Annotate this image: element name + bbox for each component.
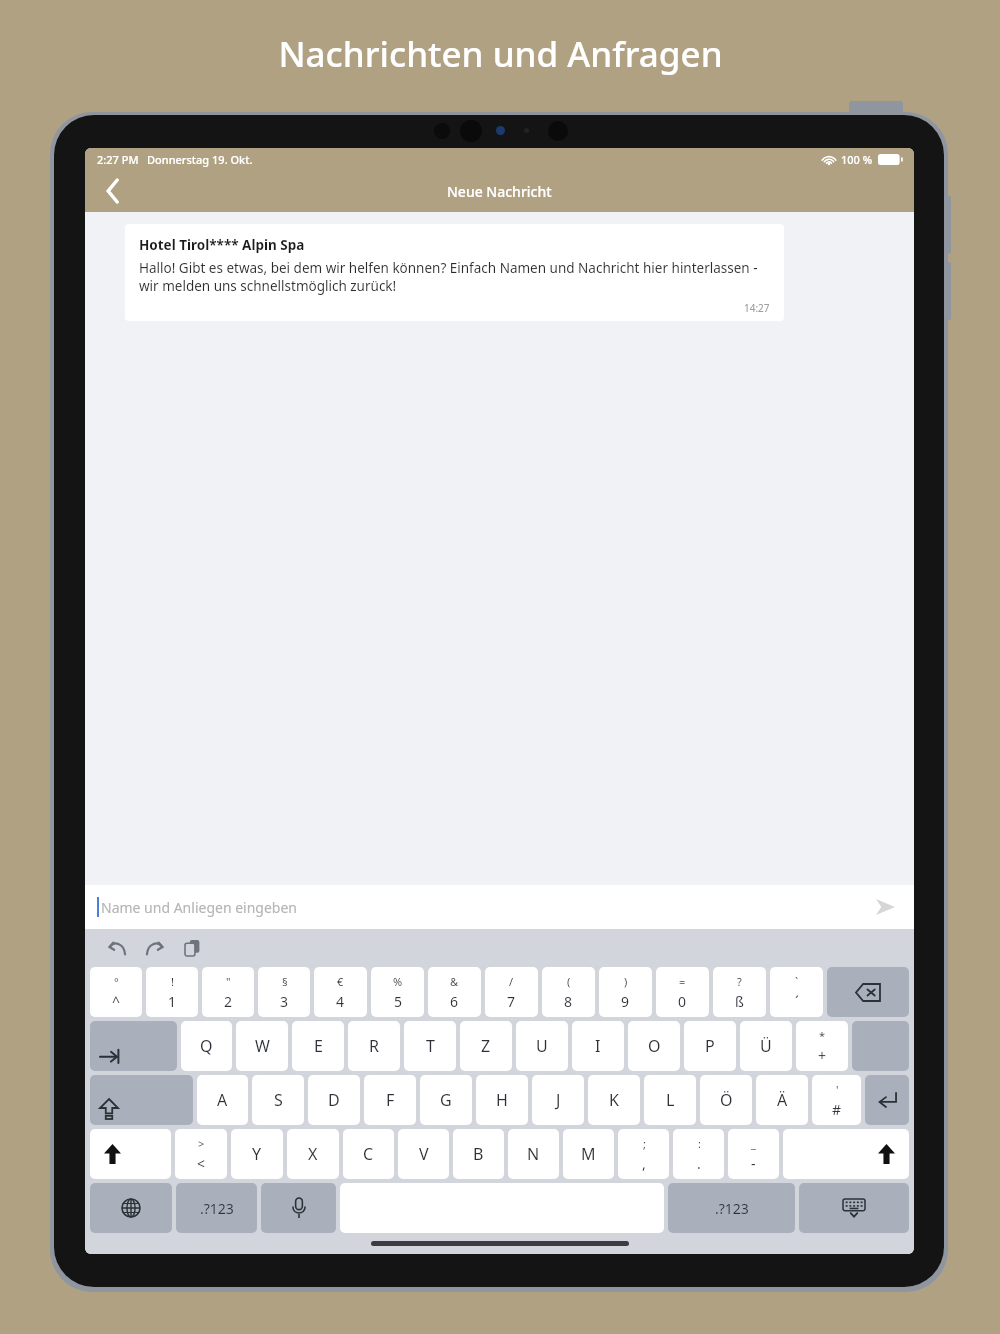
button[interactable]: L [644,1075,696,1125]
button[interactable]: P [684,1021,736,1071]
button[interactable]: D [308,1075,360,1125]
button[interactable]: ! [146,967,198,1017]
staticText: 4 [336,992,345,1011]
button[interactable]: .?123 [176,1183,257,1233]
staticText: ) [624,974,628,989]
button[interactable]: % [371,967,424,1017]
staticText: 14:27 [744,301,770,315]
staticText: .?123 [200,1199,234,1218]
button[interactable]: I [572,1021,624,1071]
staticText: M [581,1143,596,1165]
button[interactable]: N [508,1129,559,1179]
staticText: * [819,1028,826,1043]
button[interactable]: Hotel Tirol**** Alpin Spa [125,224,784,321]
button[interactable]: & [428,967,481,1017]
button[interactable]: H [476,1075,528,1125]
staticText: 1 [168,992,177,1011]
button[interactable]: " [202,967,254,1017]
button[interactable]: Tastatur ausblenden [799,1183,909,1233]
button[interactable]: * [796,1021,848,1071]
button[interactable]: T [404,1021,456,1071]
button[interactable]: S [252,1075,304,1125]
staticText: K [609,1089,619,1111]
button[interactable]: ` [770,967,823,1017]
button[interactable]: > [175,1129,227,1179]
button[interactable]: § [258,967,310,1017]
button[interactable]: Umschalt rechts [783,1129,909,1179]
staticText: ß [735,992,744,1011]
staticText: F [386,1089,395,1111]
staticText: _ [751,1136,756,1151]
button[interactable]: ° [90,967,142,1017]
button[interactable]: J [532,1075,584,1125]
button[interactable]: Tabulator [90,1021,177,1071]
button[interactable]: Ä [756,1075,808,1125]
button[interactable]: Löschen [827,967,909,1017]
button[interactable]: ( [542,967,595,1017]
button[interactable]: Senden [868,890,902,924]
button[interactable]: M [563,1129,614,1179]
button[interactable]: O [628,1021,680,1071]
staticText: Ü [760,1035,772,1057]
button[interactable]: X [287,1129,339,1179]
staticText: R [369,1035,379,1057]
button[interactable]: C [343,1129,394,1179]
button[interactable]: F [364,1075,416,1125]
staticText: L [666,1089,675,1111]
staticText: ° [114,974,119,989]
button[interactable]: G [420,1075,472,1125]
staticText: 2:27 PM [97,152,139,167]
button[interactable]: K [588,1075,640,1125]
button[interactable]: Name und Anliegen eingeben [85,885,914,929]
button[interactable]: Umschalt links [90,1129,171,1179]
button[interactable]: R [348,1021,400,1071]
button[interactable]: ; [618,1129,669,1179]
button[interactable]: Rückgängig [101,932,133,964]
button[interactable]: = [656,967,709,1017]
button[interactable]: Q [181,1021,232,1071]
button[interactable]: Zurück [85,170,141,212]
staticText: + [818,1046,827,1065]
button[interactable]: / [485,967,538,1017]
button[interactable]: Diktat [261,1183,336,1233]
button[interactable]: Leer [852,1021,909,1071]
button[interactable]: ) [599,967,652,1017]
staticText: S [274,1089,283,1111]
staticText: Name und Anliegen eingeben [101,898,298,917]
button[interactable]: _ [728,1129,779,1179]
staticText: . [697,1154,701,1173]
button[interactable]: € [314,967,367,1017]
button[interactable]: A [197,1075,248,1125]
button[interactable]: Feststelltaste [90,1075,193,1125]
staticText: B [473,1143,484,1165]
button[interactable]: .?123 [668,1183,795,1233]
staticText: Neue Nachricht [447,182,552,201]
staticText: X [308,1143,318,1165]
button[interactable]: Wiederholen [139,932,171,964]
button[interactable]: U [516,1021,568,1071]
button[interactable]: E [292,1021,344,1071]
button[interactable]: Ö [700,1075,752,1125]
button[interactable]: ' [812,1075,861,1125]
button[interactable]: Eingabe [865,1075,909,1125]
button[interactable]: Y [231,1129,283,1179]
staticText: § [282,974,288,989]
button[interactable]: Z [460,1021,512,1071]
staticText: J [556,1089,561,1111]
button[interactable]: Einfügen [177,932,209,964]
button[interactable]: W [236,1021,288,1071]
staticText: T [426,1035,435,1057]
button[interactable]: ? [713,967,766,1017]
staticText: O [648,1035,661,1057]
button[interactable]: V [398,1129,449,1179]
staticText: = [679,974,686,989]
button[interactable]: B [453,1129,504,1179]
staticText: I [595,1035,601,1057]
staticText: ' [836,1082,839,1097]
button[interactable]: : [673,1129,724,1179]
staticText: : [698,1136,701,1151]
staticText: 0 [678,992,687,1011]
button[interactable]: Sprache [90,1183,172,1233]
button[interactable]: Ü [740,1021,792,1071]
